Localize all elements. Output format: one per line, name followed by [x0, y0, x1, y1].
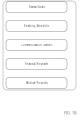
staticText: Review Goals — [28, 5, 44, 9]
button[interactable]: Reading Schedule — [6, 20, 67, 31]
button[interactable]: Review Goals — [6, 1, 67, 12]
staticText: FIG. 1B — [64, 110, 77, 115]
button[interactable]: Financial Research — [6, 58, 67, 69]
button[interactable]: Communication Devices — [6, 39, 67, 50]
staticText: Reading Schedule — [23, 24, 49, 28]
button[interactable]: Medical Records — [6, 77, 67, 88]
staticText: Medical Records — [25, 81, 47, 85]
staticText: Financial Research — [24, 62, 48, 66]
staticText: Communication Devices — [21, 43, 52, 47]
